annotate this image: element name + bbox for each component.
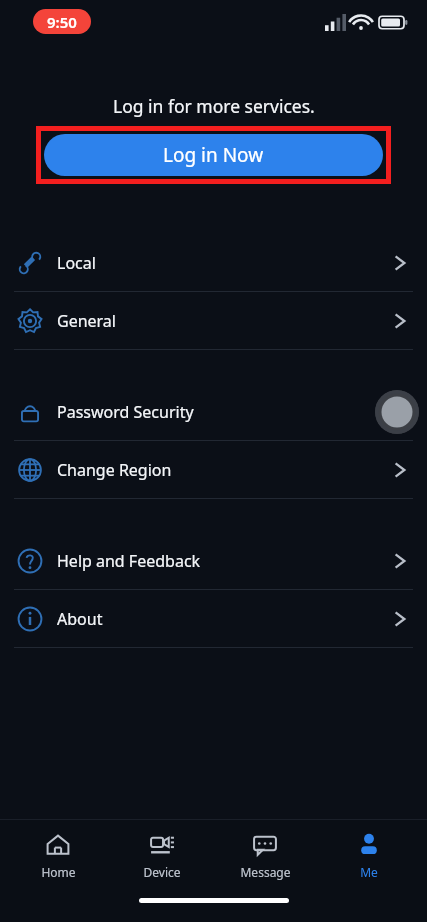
staticText: Local (57, 252, 96, 274)
staticText: Message (240, 864, 291, 880)
button[interactable]: Home (13, 820, 103, 892)
staticText: Change Region (57, 459, 172, 481)
staticText: 9:50 (47, 12, 77, 32)
staticText: Home (41, 864, 76, 880)
button[interactable]: Log in Now (44, 134, 383, 176)
button[interactable]: Device (117, 820, 207, 892)
staticText: Help and Feedback (57, 550, 201, 572)
staticText: General (57, 310, 116, 332)
staticText: Me (360, 864, 378, 880)
button[interactable]: Password Security (0, 383, 427, 440)
button[interactable]: Change Region (0, 441, 427, 498)
staticText: Log in Now (163, 142, 264, 168)
button[interactable]: Message (220, 820, 310, 892)
staticText: About (57, 608, 103, 630)
button[interactable]: Local (0, 234, 427, 291)
button[interactable]: General (0, 292, 427, 349)
staticText: Password Security (57, 401, 194, 423)
staticText: Log in for more services. (113, 94, 315, 118)
button[interactable]: Help and Feedback (0, 532, 427, 589)
button[interactable]: Me (324, 820, 414, 892)
staticText: Device (143, 864, 181, 880)
button[interactable]: About (0, 590, 427, 647)
